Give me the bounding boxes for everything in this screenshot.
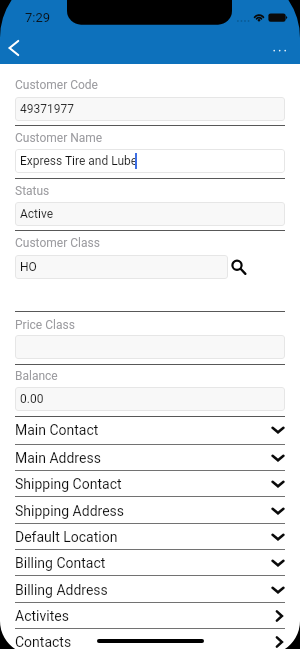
staticText: HO	[20, 260, 37, 274]
staticText: Balance	[15, 369, 58, 383]
staticText: Shipping Address	[15, 503, 125, 519]
staticText: Main Address	[15, 450, 101, 466]
staticText: Default Location	[15, 529, 118, 545]
staticText: Customer Code	[15, 78, 98, 92]
button[interactable]: Activites	[15, 603, 285, 628]
button[interactable]: Back	[1, 34, 29, 62]
button[interactable]: Active	[15, 202, 285, 226]
button[interactable]: Main Address	[15, 445, 285, 470]
button[interactable]: Contacts	[15, 629, 285, 649]
button[interactable]: HO	[15, 255, 228, 279]
staticText: Customer Class	[15, 236, 100, 250]
button[interactable]: Billing Contact	[15, 550, 285, 575]
button[interactable]	[15, 335, 285, 359]
button[interactable]: 49371977	[15, 97, 285, 121]
staticText: 7:29	[25, 10, 51, 25]
staticText: Express Tire and Lube	[20, 154, 138, 168]
staticText: Main Contact	[15, 422, 99, 438]
button[interactable]: Billing Address	[15, 577, 285, 602]
staticText: Billing Contact	[15, 555, 106, 571]
button[interactable]: Search	[228, 255, 250, 277]
staticText: Shipping Contact	[15, 476, 122, 492]
staticText: Customer Name	[15, 131, 103, 145]
button[interactable]: Shipping Address	[15, 498, 285, 523]
staticText: 49371977	[20, 102, 74, 116]
staticText: Active	[20, 207, 54, 221]
button[interactable]: 0.00	[15, 387, 285, 411]
staticText: Contacts	[15, 634, 72, 649]
button[interactable]: More options	[265, 36, 293, 64]
staticText: Activites	[15, 608, 69, 624]
button[interactable]: Default Location	[15, 524, 285, 549]
staticText: Status	[15, 184, 50, 198]
staticText: 0.00	[20, 392, 44, 406]
staticText: Billing Address	[15, 582, 108, 598]
button[interactable]: Main Contact	[15, 417, 285, 443]
button[interactable]: Express Tire and Lube	[15, 149, 285, 173]
button[interactable]: Shipping Contact	[15, 471, 285, 496]
staticText: Price Class	[15, 318, 75, 332]
